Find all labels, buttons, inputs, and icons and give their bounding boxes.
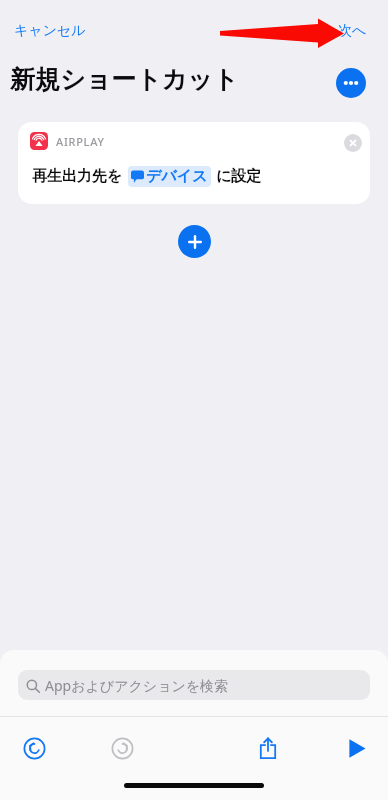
button[interactable]: 取り消す: [14, 728, 54, 768]
button[interactable]: キャンセル: [8, 18, 92, 44]
staticText: キャンセル: [14, 22, 86, 40]
button[interactable]: アクションを追加: [178, 225, 211, 258]
staticText: AIRPLAY: [56, 134, 105, 149]
button[interactable]: 共有: [248, 728, 288, 768]
staticText: に設定: [216, 167, 262, 186]
button[interactable]: デバイス: [128, 166, 211, 187]
button[interactable]: 次へ: [332, 18, 373, 44]
button[interactable]: 実行: [336, 728, 376, 768]
button[interactable]: 削除: [344, 134, 362, 152]
staticText: Appおよびアクションを検索: [45, 676, 229, 695]
button[interactable]: やり直す: [102, 728, 142, 768]
staticText: デバイス: [146, 167, 208, 186]
button[interactable]: 詳細: [336, 68, 366, 98]
staticText: 再生出力先を: [32, 167, 123, 186]
staticText: 新規ショートカット: [10, 64, 239, 95]
staticText: 次へ: [338, 22, 367, 40]
button[interactable]: Appおよびアクションを検索: [18, 670, 370, 700]
button[interactable]: AIRPLAY: [18, 122, 370, 204]
